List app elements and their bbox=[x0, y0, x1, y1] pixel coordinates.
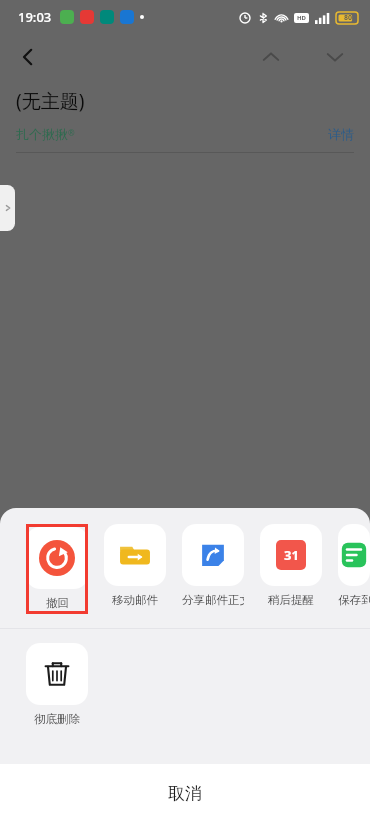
button[interactable]: 移动邮件 bbox=[104, 524, 166, 607]
staticText: 详情 bbox=[328, 126, 354, 142]
button[interactable]: 彻底删除 bbox=[26, 643, 88, 726]
button[interactable]: 保存到 bbox=[338, 524, 370, 607]
staticText: (无主题) bbox=[16, 88, 85, 114]
button[interactable]: 31 bbox=[260, 524, 322, 607]
staticText: 撤回 bbox=[46, 596, 69, 610]
staticText: 扎个揪揪 bbox=[16, 126, 68, 142]
staticText: 80 bbox=[344, 13, 353, 23]
staticText: 稍后提醒 bbox=[268, 593, 314, 607]
staticText: 取消 bbox=[168, 783, 202, 804]
button[interactable]: Back bbox=[8, 37, 48, 77]
staticText: ® bbox=[68, 127, 75, 138]
button[interactable]: 详情 bbox=[328, 126, 354, 142]
staticText: 移动邮件 bbox=[112, 593, 158, 607]
staticText: 31 bbox=[284, 546, 299, 564]
button[interactable]: Previous bbox=[256, 42, 286, 72]
button[interactable]: 撤回 bbox=[26, 524, 88, 614]
staticText: 19:03 bbox=[18, 8, 52, 26]
button[interactable]: 取消 bbox=[0, 764, 370, 822]
button[interactable]: Expand panel bbox=[0, 185, 15, 231]
button[interactable]: Next bbox=[320, 42, 350, 72]
staticText: 分享邮件正文 bbox=[182, 593, 244, 607]
staticText: HD bbox=[297, 14, 306, 22]
staticText: 保存到 bbox=[338, 593, 370, 607]
staticText: 彻底删除 bbox=[34, 712, 80, 726]
button[interactable]: 分享邮件正文 bbox=[182, 524, 244, 607]
